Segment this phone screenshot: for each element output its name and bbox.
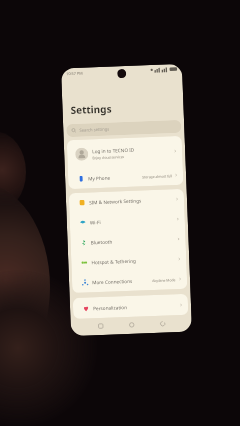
button[interactable]: Search settings — [66, 120, 181, 137]
button[interactable]: More Connections — [72, 269, 187, 293]
button[interactable]: Back — [146, 314, 178, 332]
button[interactable]: My Phone — [68, 165, 183, 189]
button[interactable]: Home — [115, 315, 147, 333]
button[interactable]: Personalization — [73, 295, 188, 319]
staticText: Log in to TECNO ID — [92, 147, 135, 154]
staticText: More Connections — [92, 278, 133, 285]
button[interactable]: Recents — [84, 316, 116, 335]
staticText: Wi-Fi — [90, 219, 101, 225]
button[interactable]: Wi-Fi — [69, 209, 185, 233]
staticText: Hotspot & Tethering — [91, 258, 136, 265]
staticText: Personalization — [93, 304, 127, 311]
staticText: Enjoy cloud services — [92, 154, 124, 160]
staticText: SIM & Network Settings — [89, 197, 142, 205]
staticText: My Phone — [88, 175, 110, 181]
button[interactable]: Log in to TECNO ID — [67, 136, 183, 169]
staticText: Bluetooth — [90, 239, 113, 245]
staticText: Airplane Mode — [152, 277, 176, 283]
button[interactable]: Hotspot & Tethering — [71, 249, 187, 273]
staticText: Storage almost full — [142, 173, 172, 179]
button[interactable]: Bluetooth — [70, 229, 186, 253]
button[interactable]: SIM & Network Settings — [69, 189, 184, 213]
staticText: Search settings — [79, 127, 109, 134]
staticText: 10:57 PM — [66, 71, 83, 76]
staticText: Settings — [70, 101, 112, 117]
